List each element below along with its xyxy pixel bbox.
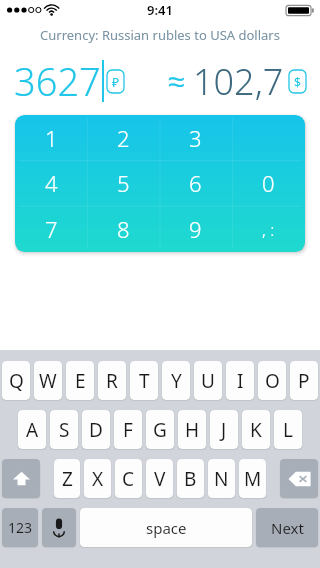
button[interactable]: Dictation <box>42 508 76 547</box>
staticText: Next <box>271 518 304 538</box>
button[interactable]: 4 <box>15 160 87 206</box>
button[interactable] <box>232 115 305 160</box>
staticText: 1 <box>45 123 58 153</box>
staticText: L <box>283 417 293 443</box>
button[interactable]: O <box>258 361 286 400</box>
staticText: M <box>244 466 262 492</box>
staticText: Z <box>62 466 73 492</box>
staticText: G <box>153 417 167 443</box>
button[interactable]: Shift <box>2 459 40 498</box>
button[interactable]: X <box>84 459 111 498</box>
staticText: Y <box>171 368 182 394</box>
staticText: B <box>184 466 197 492</box>
button[interactable]: 6 <box>159 160 232 206</box>
button[interactable]: , : <box>232 206 305 252</box>
button[interactable]: 123 <box>2 508 38 547</box>
button[interactable]: 8 <box>87 206 159 252</box>
staticText: R <box>106 368 118 394</box>
button[interactable]: 3627 <box>14 55 124 107</box>
button[interactable]: E <box>66 361 94 400</box>
button[interactable]: J <box>210 410 238 449</box>
button[interactable]: P <box>290 361 318 400</box>
staticText: W <box>39 368 57 394</box>
button[interactable]: Q <box>2 361 30 400</box>
button[interactable]: 0 <box>232 160 305 206</box>
staticText: C <box>122 466 135 492</box>
staticText: E <box>75 368 86 394</box>
staticText: I <box>237 368 244 394</box>
staticText: 8 <box>117 214 130 244</box>
staticText: 4 <box>45 168 58 198</box>
staticText: ₽ <box>112 74 119 90</box>
staticText: F <box>123 417 133 443</box>
staticText: 0 <box>262 168 275 198</box>
button[interactable]: N <box>208 459 235 498</box>
button[interactable]: ≈ <box>168 57 306 106</box>
staticText: 2 <box>117 123 130 153</box>
staticText: 6 <box>189 168 202 198</box>
staticText: 3 <box>189 123 202 153</box>
button[interactable]: V <box>146 459 173 498</box>
staticText: T <box>139 368 150 394</box>
button[interactable]: K <box>242 410 270 449</box>
staticText: 102,7 <box>193 57 284 106</box>
button[interactable]: Backspace <box>280 459 318 498</box>
button[interactable]: D <box>82 410 110 449</box>
button[interactable]: 3 <box>159 115 232 160</box>
staticText: H <box>185 417 200 443</box>
staticText: 7 <box>45 214 58 244</box>
staticText: Q <box>9 368 24 394</box>
staticText: V <box>154 466 166 492</box>
button[interactable]: space <box>80 508 252 547</box>
staticText: P <box>298 368 310 394</box>
staticText: A <box>26 417 39 443</box>
button[interactable]: I <box>226 361 254 400</box>
button[interactable]: 9 <box>159 206 232 252</box>
staticText: Currency: Russian rubles to USA dollars <box>40 26 280 44</box>
button[interactable]: Next <box>256 508 318 547</box>
staticText: , : <box>262 218 275 241</box>
button[interactable]: B <box>177 459 204 498</box>
button[interactable]: L <box>274 410 302 449</box>
button[interactable]: R <box>98 361 126 400</box>
button[interactable]: G <box>146 410 174 449</box>
staticText: 3627 <box>14 55 101 107</box>
button[interactable]: 1 <box>15 115 87 160</box>
staticText: 9:41 <box>147 1 173 19</box>
button[interactable]: H <box>178 410 206 449</box>
staticText: 9 <box>189 214 202 244</box>
staticText: O <box>265 368 280 394</box>
staticText: 123 <box>8 518 33 537</box>
staticText: K <box>250 417 262 443</box>
button[interactable]: 7 <box>15 206 87 252</box>
staticText: ≈ <box>168 65 185 99</box>
button[interactable]: C <box>115 459 142 498</box>
button[interactable]: Z <box>54 459 80 498</box>
staticText: $ <box>294 74 301 90</box>
button[interactable]: F <box>114 410 142 449</box>
button[interactable]: A <box>18 410 46 449</box>
button[interactable]: S <box>50 410 78 449</box>
staticText: U <box>201 368 215 394</box>
button[interactable]: Y <box>162 361 190 400</box>
button[interactable]: 5 <box>87 160 159 206</box>
button[interactable]: M <box>239 459 266 498</box>
button[interactable]: T <box>130 361 158 400</box>
staticText: space <box>146 518 187 538</box>
staticText: S <box>59 417 70 443</box>
button[interactable]: U <box>194 361 222 400</box>
staticText: X <box>92 466 104 492</box>
staticText: J <box>221 417 227 443</box>
staticText: D <box>89 417 103 443</box>
staticText: 5 <box>117 168 130 198</box>
staticText: N <box>214 466 229 492</box>
button[interactable]: 2 <box>87 115 159 160</box>
button[interactable]: W <box>34 361 62 400</box>
